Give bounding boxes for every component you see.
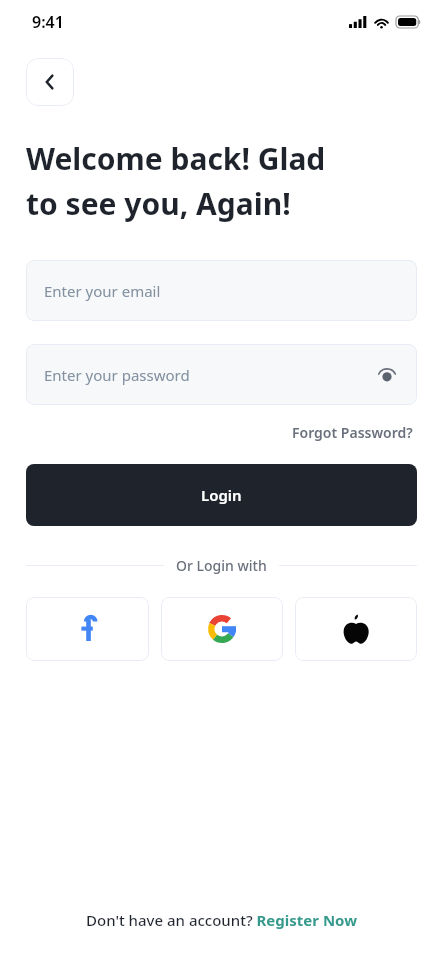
button[interactable]: Don't have an account? Register Now: [0, 910, 443, 960]
button[interactable]: Forgot Password?: [288, 419, 417, 446]
staticText: Or Login with: [176, 556, 267, 575]
staticText: Login: [201, 485, 242, 505]
button[interactable]: Enter your email: [26, 260, 417, 321]
button[interactable]: Sign in with Apple: [295, 597, 417, 661]
staticText: Forgot Password?: [292, 423, 413, 442]
staticText: 9:41: [32, 11, 64, 33]
button[interactable]: Show password: [375, 363, 399, 387]
staticText: Enter your email: [44, 281, 161, 301]
staticText: Welcome back! Glad to see you, Again!: [26, 138, 326, 224]
staticText: Don't have an account? Register Now: [86, 910, 357, 930]
button[interactable]: Back: [26, 58, 74, 106]
button[interactable]: Enter your password: [26, 344, 417, 405]
staticText: Enter your password: [44, 365, 190, 385]
button[interactable]: Sign in with Google: [161, 597, 283, 661]
button[interactable]: Sign in with Facebook: [26, 597, 149, 661]
button[interactable]: Login: [26, 464, 417, 526]
